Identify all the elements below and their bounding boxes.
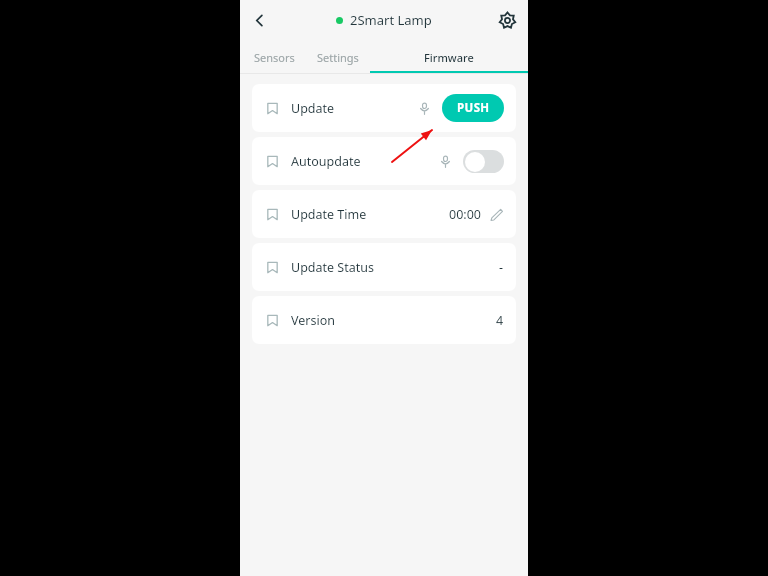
button[interactable]: Settings: [306, 40, 370, 74]
staticText: 00:00: [449, 206, 481, 223]
button[interactable]: Update Status: [252, 243, 516, 291]
button[interactable]: Back: [242, 3, 276, 37]
staticText: Autoupdate: [291, 153, 361, 170]
button[interactable]: PUSH: [442, 94, 504, 122]
button[interactable]: Version: [252, 296, 516, 344]
staticText: -: [499, 259, 504, 276]
staticText: Settings: [317, 50, 359, 65]
staticText: Update: [291, 100, 335, 117]
staticText: 4: [496, 312, 504, 329]
button[interactable]: Settings: [490, 3, 524, 37]
button[interactable]: Update Time: [252, 190, 516, 238]
staticText: Sensors: [254, 50, 295, 65]
button[interactable]: Autoupdate toggle: [463, 150, 504, 173]
button[interactable]: Update: [252, 84, 516, 132]
staticText: Update Time: [291, 206, 367, 223]
button[interactable]: Sensors: [243, 40, 306, 74]
button[interactable]: Firmware: [370, 40, 528, 74]
button[interactable]: Autoupdate: [252, 137, 516, 185]
staticText: 2Smart Lamp: [350, 11, 432, 29]
staticText: Version: [291, 312, 335, 329]
button[interactable]: Edit update time: [488, 206, 504, 222]
staticText: Firmware: [424, 50, 474, 65]
staticText: Update Status: [291, 259, 374, 276]
staticText: PUSH: [457, 100, 490, 116]
